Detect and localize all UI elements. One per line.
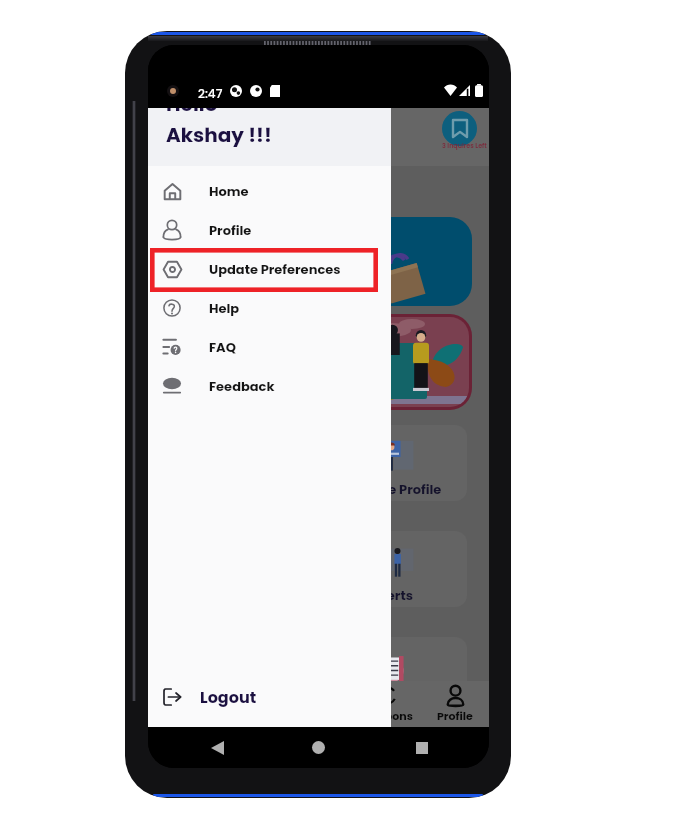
button[interactable] (162, 217, 472, 306)
staticText: Home (209, 182, 249, 200)
staticText: Hello (166, 108, 218, 118)
button[interactable]: Coupons (353, 681, 421, 727)
button[interactable]: FAQ (148, 327, 391, 366)
button[interactable]: lerts (162, 531, 467, 607)
button[interactable]: te Profile (162, 425, 467, 501)
button[interactable]: Profile (421, 681, 489, 727)
button[interactable]: Coupons (162, 314, 472, 410)
staticText: 2:47 (198, 85, 223, 102)
button[interactable]: Feedback (148, 366, 391, 405)
button[interactable]: Update Preferences (148, 249, 391, 288)
staticText: Help (209, 299, 240, 317)
staticText: Profile (437, 708, 473, 723)
button[interactable] (162, 637, 467, 713)
button[interactable]: Help (148, 288, 391, 327)
staticText: te Profile (383, 480, 442, 498)
staticText: Profile (209, 221, 252, 239)
button[interactable]: Home (148, 171, 391, 210)
staticText: 3 Inquires Left (442, 141, 487, 150)
staticText: Update Preferences (209, 260, 341, 278)
button[interactable]: Inquiries (442, 111, 477, 146)
staticText: Logout (200, 686, 257, 708)
staticText: Coupons (362, 708, 413, 723)
staticText: FAQ (209, 338, 236, 356)
button[interactable]: Profile (148, 210, 391, 249)
staticText: Akshay !!! (166, 121, 272, 149)
staticText: lerts (383, 586, 413, 604)
other: Back (211, 741, 224, 755)
staticText: Feedback (209, 377, 275, 395)
button[interactable]: Logout (148, 669, 391, 724)
